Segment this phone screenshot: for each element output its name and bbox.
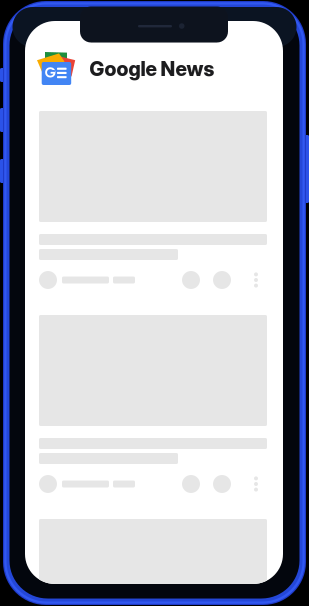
button[interactable]	[39, 271, 149, 289]
button[interactable]: Share	[182, 475, 200, 493]
staticText: Google News	[89, 56, 214, 81]
button[interactable]: Google News	[37, 52, 237, 90]
button[interactable]: More	[247, 271, 265, 289]
button[interactable]	[39, 475, 149, 493]
button[interactable]: Save	[213, 271, 231, 289]
button[interactable]: Save	[213, 475, 231, 493]
button[interactable]: Share	[182, 271, 200, 289]
button[interactable]: More	[247, 475, 265, 493]
